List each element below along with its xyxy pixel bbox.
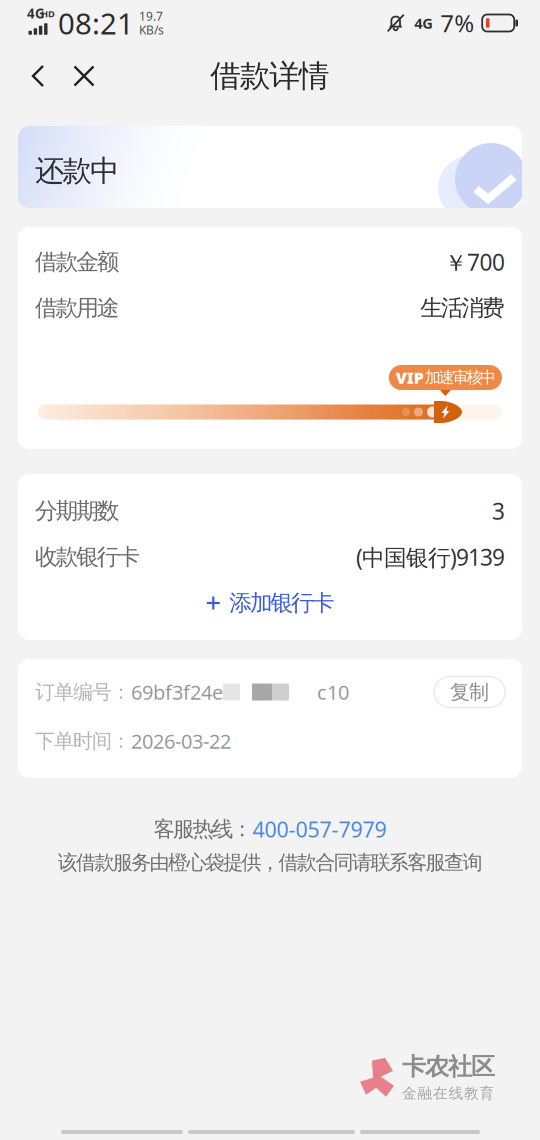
staticText: 7%	[440, 7, 474, 39]
button[interactable]: 添加银行卡	[35, 580, 505, 626]
button[interactable]: 关闭	[64, 48, 104, 104]
staticText: 4G	[414, 13, 433, 33]
staticText: 69bf3f24e	[131, 679, 223, 705]
staticText: 金融在线教育	[402, 1084, 494, 1102]
staticText: (中国银行)9139	[356, 542, 505, 572]
staticText: 分期期数	[35, 497, 120, 525]
staticText: 借款详情	[210, 57, 330, 95]
staticText: c10	[317, 679, 349, 705]
button[interactable]: 返回	[18, 48, 58, 104]
staticText: 借款金额	[35, 248, 120, 276]
staticText: 该借款服务由橙心袋提供，借款合同请联系客服查询	[58, 850, 482, 875]
staticText: 加速审核中	[425, 368, 496, 387]
staticText: ￥700	[444, 247, 505, 277]
staticText: VIP	[396, 367, 424, 388]
staticText: 还款中	[35, 153, 119, 189]
staticText: 400-057-7979	[252, 815, 386, 843]
staticText: 19.7	[139, 8, 163, 24]
staticText: 2026-03-22	[131, 728, 231, 754]
staticText: 收款银行卡	[35, 543, 140, 571]
staticText: 下单时间：	[35, 729, 131, 753]
staticText: 3	[492, 496, 505, 526]
staticText: 添加银行卡	[229, 589, 335, 617]
staticText: 订单编号：	[35, 680, 131, 704]
staticText: 借款用途	[35, 294, 120, 322]
button[interactable]: 复制	[434, 676, 505, 707]
staticText: KB/s	[139, 22, 164, 38]
staticText: 08:21	[58, 3, 134, 42]
staticText: 客服热线：	[153, 816, 252, 842]
staticText: HD	[41, 7, 55, 20]
staticText: 生活消费	[420, 294, 505, 322]
button[interactable]: 400-057-7979	[252, 815, 386, 843]
staticText: 卡农社区	[402, 1052, 495, 1081]
staticText: 4G	[27, 4, 45, 22]
staticText: 复制	[450, 680, 489, 704]
